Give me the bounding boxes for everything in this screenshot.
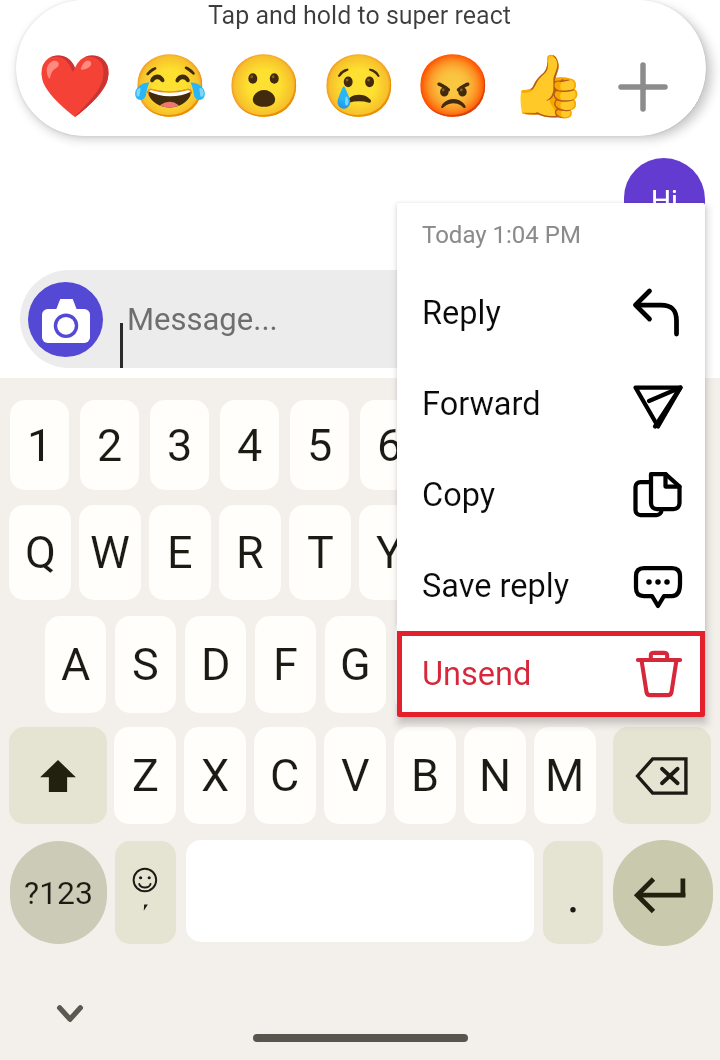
staticText: G [340, 638, 371, 691]
button[interactable]: H [395, 616, 456, 713]
staticText: W [90, 526, 130, 579]
button[interactable]: Emoji and comma [115, 841, 176, 944]
staticText: 😢 [321, 50, 395, 121]
button[interactable]: Surprised [226, 48, 300, 122]
staticText: 4 [237, 419, 263, 472]
button[interactable]: Enter [613, 840, 713, 946]
button[interactable]: More reactions [606, 50, 680, 124]
staticText: P [656, 526, 685, 579]
button[interactable]: G [325, 616, 386, 713]
staticText: 3 [167, 419, 193, 472]
button[interactable]: V [324, 727, 386, 824]
button[interactable]: ?123 [10, 841, 107, 944]
button[interactable]: 1 [10, 400, 69, 490]
staticText: Y [376, 526, 404, 579]
staticText: T [307, 526, 334, 579]
staticText: Today 1:04 PM [422, 221, 581, 249]
button[interactable]: L [605, 616, 666, 713]
staticText: R [236, 526, 264, 579]
button[interactable]: R [219, 505, 281, 600]
button[interactable]: S [115, 616, 176, 713]
button[interactable]: Reply [397, 267, 705, 358]
staticText: 😡 [415, 50, 489, 121]
button[interactable]: N [464, 727, 526, 824]
button[interactable]: 8 [500, 400, 559, 490]
button[interactable]: Save reply [397, 540, 705, 631]
staticText: 👍 [510, 50, 584, 121]
button[interactable]: P [639, 505, 701, 600]
button[interactable]: 4 [220, 400, 279, 490]
button[interactable]: Sad [321, 48, 395, 122]
button[interactable]: T [289, 505, 351, 600]
button[interactable]: Q [9, 505, 71, 600]
staticText: Message... [127, 301, 278, 337]
button[interactable]: Camera [20, 270, 680, 368]
staticText: ❤️ [37, 50, 111, 121]
staticText: 😮 [226, 50, 300, 121]
staticText: N [479, 749, 512, 802]
button[interactable]: E [149, 505, 211, 600]
staticText: Unsend [422, 655, 532, 693]
staticText: Save reply [422, 567, 570, 605]
button[interactable]: K [535, 616, 596, 713]
staticText: V [341, 749, 370, 802]
button[interactable]: Hide keyboard [45, 988, 95, 1038]
button[interactable]: Camera [28, 282, 103, 357]
staticText: Hi [651, 184, 678, 217]
staticText: Q [25, 526, 56, 579]
staticText: 5 [307, 419, 333, 472]
button[interactable]: 6 [360, 400, 419, 490]
staticText: X [201, 749, 230, 802]
staticText: D [201, 638, 231, 691]
button[interactable]: 3 [150, 400, 209, 490]
staticText: Copy [422, 476, 496, 514]
button[interactable]: Thumbs up [510, 48, 584, 122]
button[interactable]: 7 [430, 400, 489, 490]
button[interactable]: Backspace [613, 727, 711, 824]
staticText: 2 [97, 419, 123, 472]
staticText: 1 [27, 419, 53, 472]
button[interactable]: 2 [80, 400, 139, 490]
button[interactable]: B [394, 727, 456, 824]
button[interactable]: C [254, 727, 316, 824]
staticText: B [411, 749, 440, 802]
staticText: Forward [422, 385, 541, 423]
button[interactable]: J [465, 616, 526, 713]
staticText: 😂 [132, 50, 206, 121]
button[interactable]: U [429, 505, 491, 600]
button[interactable]: W [79, 505, 141, 600]
button[interactable]: Shift [9, 727, 107, 824]
button[interactable]: Copy [397, 449, 705, 540]
staticText: F [273, 638, 298, 691]
button[interactable]: 0 [640, 400, 699, 490]
button[interactable]: F [255, 616, 316, 713]
button[interactable]: Z [114, 727, 176, 824]
button[interactable]: X [184, 727, 246, 824]
staticText: 0 [657, 419, 683, 472]
staticText: C [270, 749, 300, 802]
button[interactable]: Unsend [397, 631, 705, 717]
button[interactable]: Y [359, 505, 421, 600]
button[interactable]: Laughing [132, 48, 206, 122]
button[interactable]: 5 [290, 400, 349, 490]
staticText: 6 [377, 419, 403, 472]
staticText: J [483, 638, 508, 691]
button[interactable]: Forward [397, 358, 705, 449]
button[interactable]: I [499, 505, 561, 600]
button[interactable]: Heart [37, 48, 111, 122]
staticText: M [545, 749, 585, 802]
button[interactable]: Period [543, 841, 603, 944]
button[interactable]: D [185, 616, 246, 713]
button[interactable]: A [45, 616, 106, 713]
button[interactable]: Angry [415, 48, 489, 122]
button[interactable]: M [534, 727, 596, 824]
